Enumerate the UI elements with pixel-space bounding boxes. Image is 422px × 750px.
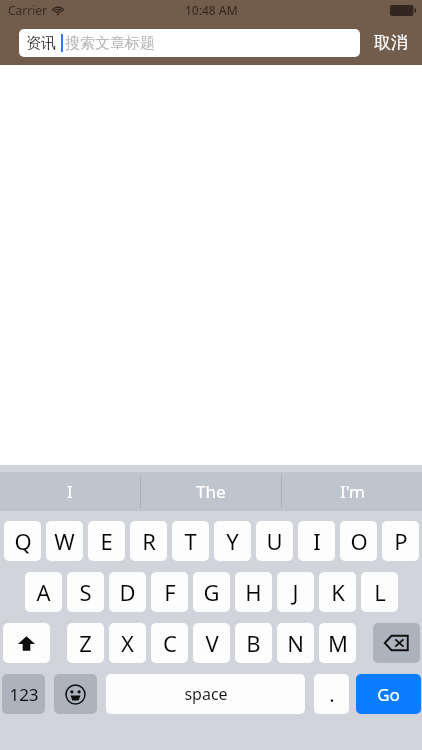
button[interactable]: G: [193, 572, 230, 612]
staticText: The: [196, 480, 226, 503]
staticText: Carrier: [8, 2, 48, 18]
button[interactable]: T: [172, 521, 209, 561]
staticText: Z: [79, 628, 92, 658]
staticText: S: [79, 577, 92, 607]
staticText: Go: [377, 683, 400, 706]
staticText: L: [374, 577, 386, 607]
staticText: .: [329, 681, 335, 708]
staticText: A: [36, 577, 51, 607]
button[interactable]: C: [151, 623, 188, 663]
staticText: R: [142, 526, 156, 556]
button[interactable]: P: [382, 521, 419, 561]
button[interactable]: 资讯: [19, 29, 360, 57]
staticText: O: [350, 526, 368, 556]
staticText: W: [54, 526, 75, 556]
button[interactable]: space: [106, 674, 305, 714]
staticText: G: [203, 577, 220, 607]
button[interactable]: J: [277, 572, 314, 612]
staticText: B: [246, 628, 261, 658]
button[interactable]: .: [314, 674, 349, 714]
staticText: 搜索文章标题: [65, 34, 155, 53]
staticText: H: [245, 577, 262, 607]
staticText: I: [67, 480, 73, 503]
button[interactable]: I: [0, 472, 140, 511]
staticText: D: [119, 577, 136, 607]
button[interactable]: H: [235, 572, 272, 612]
staticText: J: [292, 577, 299, 607]
staticText: X: [121, 628, 134, 658]
staticText: I'm: [340, 480, 365, 503]
button[interactable]: M: [319, 623, 356, 663]
button[interactable]: K: [319, 572, 356, 612]
button[interactable]: 取消: [360, 20, 422, 65]
staticText: E: [100, 526, 113, 556]
button[interactable]: W: [46, 521, 83, 561]
staticText: K: [331, 577, 345, 607]
staticText: 10:48 AM: [185, 2, 238, 18]
staticText: N: [287, 628, 304, 658]
button[interactable]: Shift: [3, 623, 50, 663]
button[interactable]: Go: [356, 674, 421, 714]
staticText: T: [184, 526, 197, 556]
staticText: V: [205, 628, 219, 658]
button[interactable]: E: [88, 521, 125, 561]
staticText: C: [163, 628, 177, 658]
button[interactable]: X: [109, 623, 146, 663]
button[interactable]: S: [67, 572, 104, 612]
staticText: F: [164, 577, 176, 607]
staticText: U: [266, 526, 283, 556]
button[interactable]: F: [151, 572, 188, 612]
staticText: space: [184, 683, 228, 705]
button[interactable]: Q: [4, 521, 41, 561]
button[interactable]: U: [256, 521, 293, 561]
button[interactable]: I'm: [282, 472, 422, 511]
staticText: 资讯: [26, 34, 56, 53]
button[interactable]: O: [340, 521, 377, 561]
button[interactable]: Backspace: [373, 623, 420, 663]
staticText: P: [394, 526, 408, 556]
button[interactable]: R: [130, 521, 167, 561]
button[interactable]: I: [298, 521, 335, 561]
staticText: 取消: [374, 32, 408, 53]
button[interactable]: Y: [214, 521, 251, 561]
button[interactable]: D: [109, 572, 146, 612]
staticText: Y: [226, 526, 239, 556]
button[interactable]: The: [141, 472, 281, 511]
button[interactable]: N: [277, 623, 314, 663]
button[interactable]: V: [193, 623, 230, 663]
staticText: 123: [9, 683, 39, 706]
button[interactable]: A: [25, 572, 62, 612]
button[interactable]: B: [235, 623, 272, 663]
staticText: M: [328, 628, 348, 658]
staticText: Q: [14, 526, 32, 556]
button[interactable]: Z: [67, 623, 104, 663]
button[interactable]: Emoji: [54, 674, 97, 714]
button[interactable]: L: [361, 572, 398, 612]
staticText: I: [313, 526, 321, 556]
button[interactable]: 123: [2, 674, 45, 714]
